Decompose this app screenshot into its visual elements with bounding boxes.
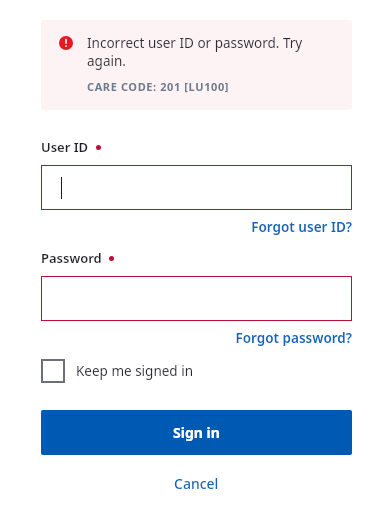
staticText: Sign in bbox=[173, 423, 220, 442]
button[interactable]: Keep me signed in bbox=[41, 359, 193, 383]
button[interactable] bbox=[41, 165, 352, 210]
staticText: CARE CODE: 201 [LU100] bbox=[87, 79, 230, 94]
button[interactable]: Forgot password? bbox=[235, 329, 352, 347]
staticText: Keep me signed in bbox=[76, 362, 193, 380]
staticText: Cancel bbox=[174, 474, 219, 493]
staticText: Forgot password? bbox=[235, 329, 352, 347]
staticText: Forgot user ID? bbox=[251, 218, 352, 236]
button[interactable]: Sign in bbox=[41, 410, 352, 455]
staticText: User ID bbox=[41, 138, 89, 156]
staticText: Incorrect user ID or password. Try again… bbox=[87, 34, 338, 70]
button[interactable]: Forgot user ID? bbox=[251, 218, 352, 236]
staticText: Password bbox=[41, 249, 102, 267]
button[interactable]: Cancel bbox=[41, 474, 352, 493]
button[interactable] bbox=[41, 276, 352, 321]
